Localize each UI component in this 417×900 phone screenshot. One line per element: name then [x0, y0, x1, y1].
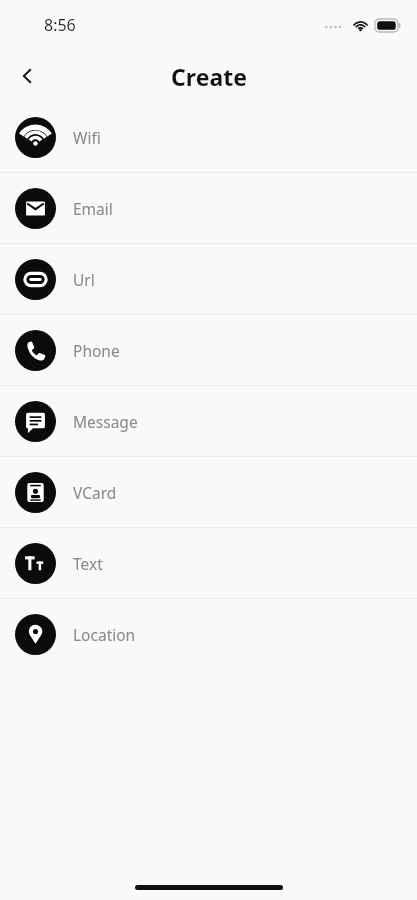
staticText: VCard [73, 482, 117, 503]
button[interactable]: Wifi [0, 102, 417, 172]
staticText: Message [73, 411, 138, 432]
button[interactable]: Email [0, 173, 417, 243]
staticText: Create [171, 61, 247, 92]
button[interactable]: Location [0, 599, 417, 669]
button[interactable]: Back [6, 54, 50, 98]
button[interactable]: Text [0, 528, 417, 598]
staticText: Url [73, 269, 95, 290]
button[interactable]: Phone [0, 315, 417, 385]
button[interactable]: Url [0, 244, 417, 314]
staticText: Text [73, 553, 103, 574]
staticText: Wifi [73, 127, 101, 148]
staticText: 8:56 [44, 14, 76, 36]
staticText: Location [73, 624, 136, 645]
button[interactable]: Message [0, 386, 417, 456]
staticText: Phone [73, 340, 120, 361]
button[interactable]: VCard [0, 457, 417, 527]
staticText: Email [73, 198, 113, 219]
